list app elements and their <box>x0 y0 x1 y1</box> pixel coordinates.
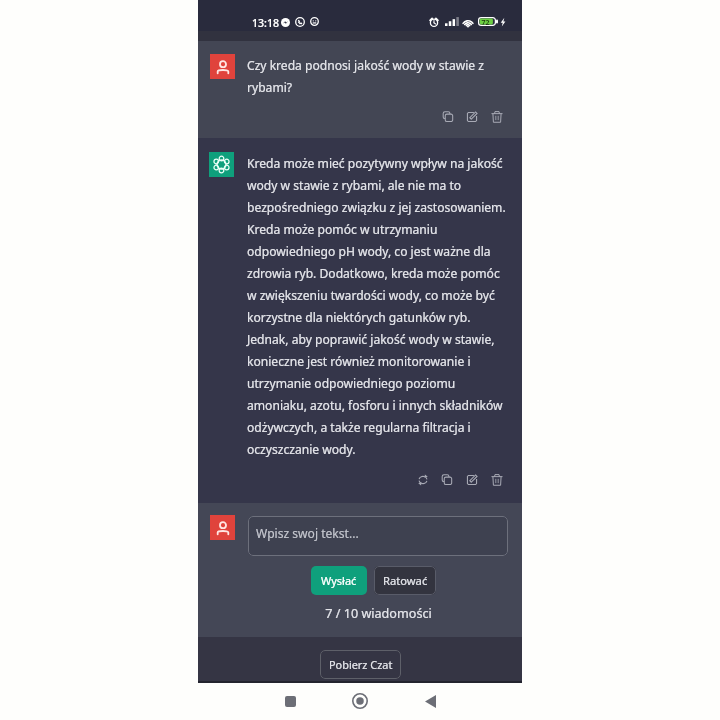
button[interactable]: Home <box>345 686 375 716</box>
staticText: Czy kreda podnosi jakość wody w stawie z… <box>247 57 511 96</box>
staticText: 13:18 <box>252 16 280 30</box>
staticText: Kreda może mieć pozytywny wpływ na jakoś… <box>247 155 511 458</box>
button[interactable]: Edit <box>464 109 480 125</box>
button[interactable]: Edit <box>464 472 480 488</box>
staticText: Pobierz Czat <box>329 657 393 672</box>
staticText: 7 / 10 wiadomości <box>325 605 432 622</box>
staticText: Wysłać <box>321 573 357 588</box>
staticText: 72 <box>481 18 490 28</box>
button[interactable]: Recent apps <box>275 686 305 716</box>
button[interactable]: Ratować <box>374 566 436 595</box>
button[interactable]: Delete <box>489 472 505 488</box>
button[interactable]: Regenerate <box>415 472 431 488</box>
staticText: Ratować <box>383 573 428 588</box>
button[interactable]: Back <box>415 686 445 716</box>
button[interactable]: Pobierz Czat <box>320 650 401 679</box>
button[interactable]: Copy <box>439 472 455 488</box>
button[interactable]: Wysłać <box>311 566 367 595</box>
button[interactable]: Wpisz swoj tekst... <box>248 516 508 556</box>
staticText: Wpisz swoj tekst... <box>256 525 359 541</box>
button[interactable]: Delete <box>489 109 505 125</box>
button[interactable]: Copy <box>440 109 456 125</box>
